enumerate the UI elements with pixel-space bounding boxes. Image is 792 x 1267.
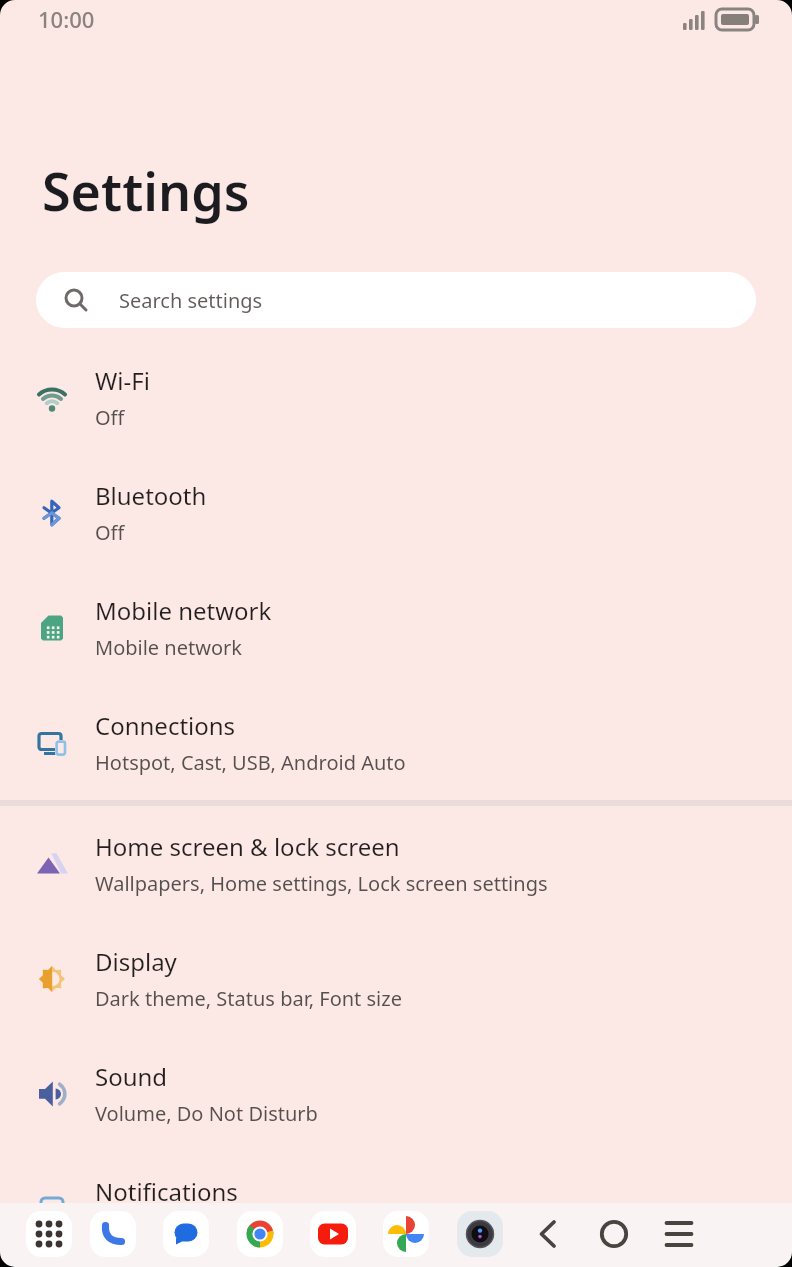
staticText: Bluetooth	[95, 479, 207, 512]
staticText: Connections	[95, 709, 236, 742]
button[interactable]	[163, 1211, 209, 1257]
button[interactable]: Home screen & lock screen	[0, 806, 792, 921]
button[interactable]	[457, 1211, 503, 1257]
button[interactable]: Bluetooth	[0, 455, 792, 570]
button[interactable]: Sound	[0, 1036, 792, 1151]
staticText: Sound	[95, 1060, 168, 1093]
button[interactable]	[90, 1211, 136, 1257]
staticText: Notifications	[95, 1175, 238, 1208]
button[interactable]	[591, 1211, 637, 1257]
staticText: Off	[95, 404, 125, 431]
staticText: Wi-Fi	[95, 364, 150, 397]
staticText: Hotspot, Cast, USB, Android Auto	[95, 749, 406, 776]
staticText: Wallpapers, Home settings, Lock screen s…	[95, 870, 548, 897]
staticText: Mobile network	[95, 594, 272, 627]
button[interactable]	[525, 1211, 571, 1257]
staticText: App notifications	[95, 1215, 254, 1242]
staticText: Mobile network	[95, 634, 242, 661]
staticText: Volume, Do Not Disturb	[95, 1100, 318, 1127]
staticText: Home screen & lock screen	[95, 830, 400, 863]
staticText: Settings	[42, 155, 250, 226]
button[interactable]	[310, 1211, 356, 1257]
staticText: Display	[95, 945, 177, 978]
staticText: Off	[95, 519, 125, 546]
button[interactable]	[383, 1211, 429, 1257]
button[interactable]	[237, 1211, 283, 1257]
button[interactable]: Display	[0, 921, 792, 1036]
button[interactable]: Wi-Fi	[0, 340, 792, 455]
button[interactable]: Mobile network	[0, 570, 792, 685]
button[interactable]	[26, 1211, 72, 1257]
button[interactable]: Search settings	[36, 272, 756, 328]
button[interactable]	[656, 1211, 702, 1257]
button[interactable]: Connections	[0, 685, 792, 800]
staticText: Dark theme, Status bar, Font size	[95, 985, 402, 1012]
button[interactable]: Notifications	[0, 1151, 792, 1266]
staticText: 10:00	[38, 4, 95, 34]
staticText: Search settings	[119, 287, 263, 314]
